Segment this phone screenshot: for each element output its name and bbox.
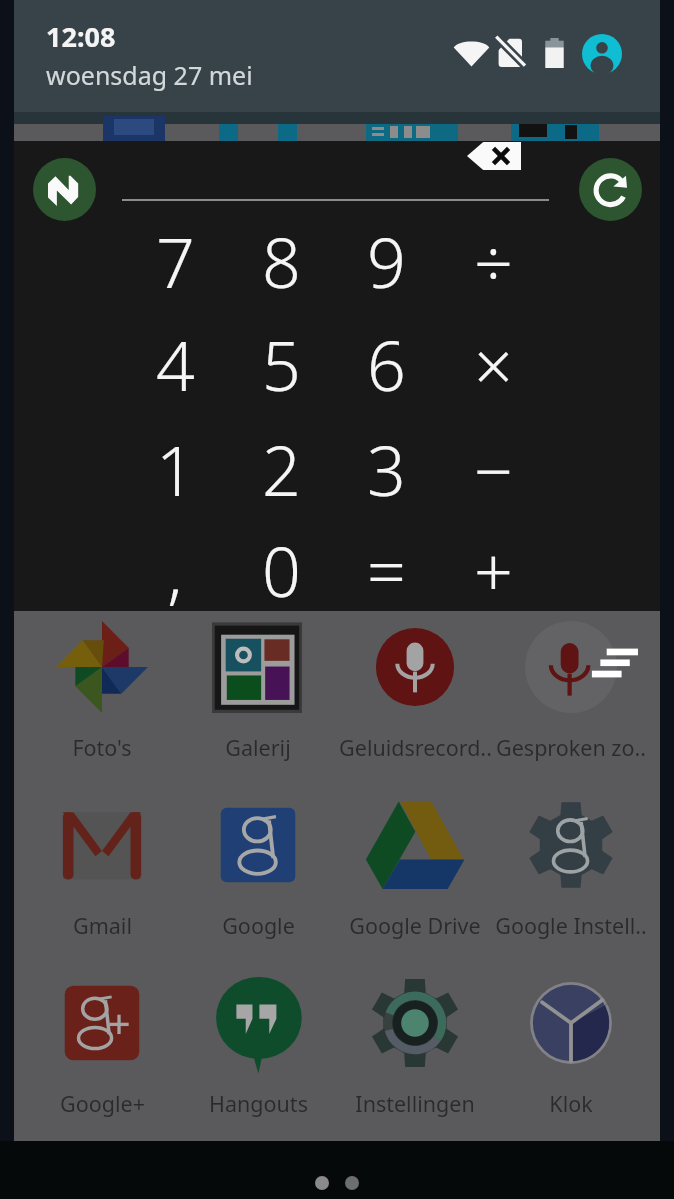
button[interactable] [337,973,493,1121]
staticText: Google Instell.. [495,911,647,940]
button[interactable]: , [123,522,227,618]
staticText: , [167,524,183,617]
staticText: 2 [262,423,301,516]
button[interactable]: 7 [123,213,227,309]
button[interactable]: = [334,522,438,618]
button[interactable]: 8 [229,213,333,309]
button[interactable] [180,617,336,765]
staticText: + [474,524,513,617]
staticText: 5 [262,318,301,411]
button[interactable]: Refresh [579,158,642,221]
button[interactable] [24,617,180,765]
staticText: 7 [156,215,195,308]
staticText: Google Drive [349,911,481,940]
button[interactable]: 9 [334,213,438,309]
staticText: × [474,318,513,411]
staticText: Gesproken zo.. [496,733,646,762]
button[interactable]: 3 [334,421,438,517]
button[interactable] [337,617,493,765]
button[interactable]: 0 [229,522,333,618]
button[interactable] [24,973,180,1121]
staticText: Google [222,911,295,940]
staticText: 3 [367,423,406,516]
staticText: 6 [367,318,406,411]
staticText: 0 [262,524,301,617]
button[interactable]: 2 [229,421,333,517]
button[interactable] [493,973,649,1121]
staticText: 8 [262,215,301,308]
staticText: = [367,524,406,617]
button[interactable]: 5 [229,316,333,412]
button[interactable] [493,795,649,943]
staticText: Foto's [72,733,132,762]
button[interactable]: User account [582,34,622,74]
staticText: 4 [156,318,195,411]
staticText: ÷ [474,215,513,308]
button[interactable]: − [441,421,545,517]
staticText: Google+ [60,1089,145,1118]
staticText: 9 [367,215,406,308]
staticText: Galerij [225,733,291,762]
button[interactable] [24,795,180,943]
button[interactable] [493,617,649,765]
button[interactable]: 1 [123,421,227,517]
button[interactable]: + [441,522,545,618]
staticText: Klok [549,1089,593,1118]
button[interactable]: ÷ [441,213,545,309]
button[interactable] [180,795,336,943]
staticText: 12:08 [46,18,116,55]
staticText: Gmail [73,911,132,940]
button[interactable] [337,795,493,943]
button[interactable]: × [441,316,545,412]
button[interactable]: Backspace [467,142,521,170]
button[interactable]: 4 [123,316,227,412]
button[interactable]: Nova menu [33,158,96,221]
staticText: Geluidsrecord.. [339,733,492,762]
button[interactable]: 6 [334,316,438,412]
staticText: woensdag 27 mei [46,58,253,92]
staticText: 1 [156,423,195,516]
staticText: Hangouts [209,1089,308,1118]
staticText: − [474,423,513,516]
button[interactable] [180,973,336,1121]
staticText: Instellingen [355,1089,475,1118]
